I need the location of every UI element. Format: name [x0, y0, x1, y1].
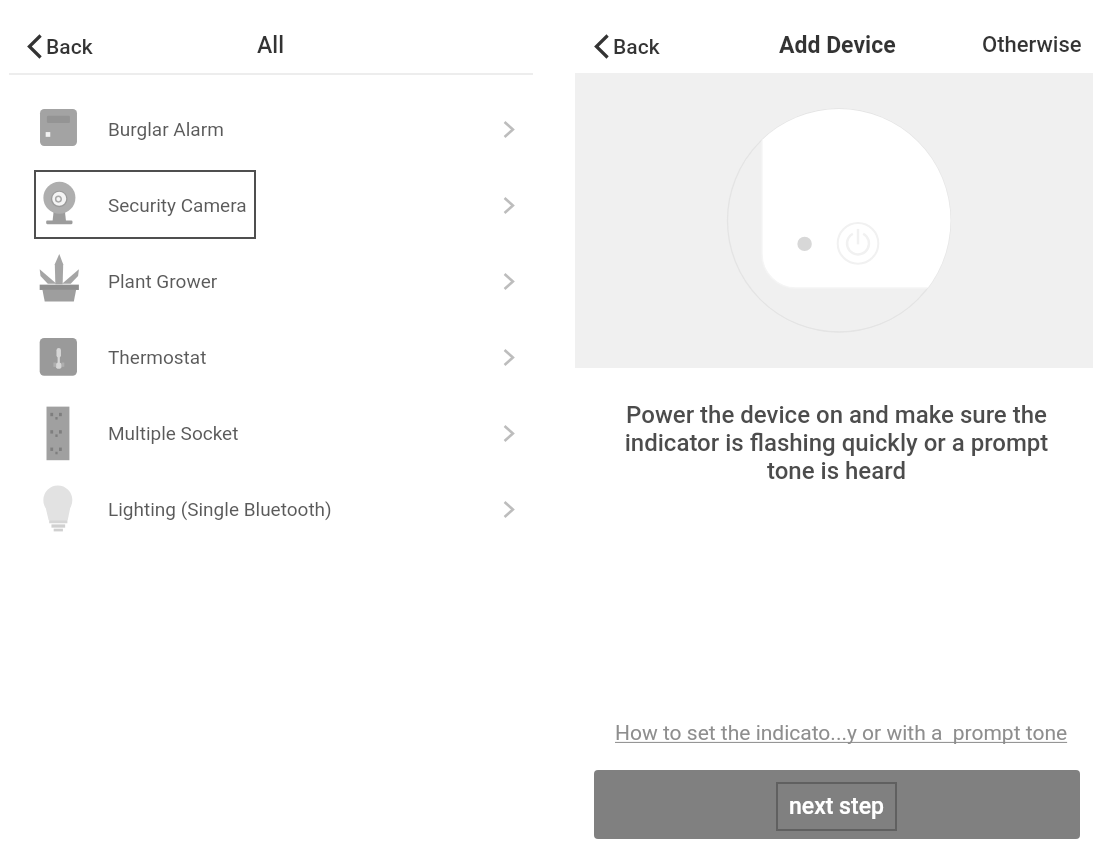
button[interactable]: Otherwise	[978, 28, 1086, 62]
staticText: Back	[46, 35, 93, 60]
button[interactable]: Back	[25, 31, 96, 60]
staticText: Security Camera	[108, 194, 247, 216]
staticText: Otherwise	[982, 32, 1082, 58]
staticText: Lighting (Single Bluetooth)	[108, 498, 332, 520]
staticText: Power the device on and make sure the in…	[618, 401, 1055, 485]
button[interactable]: next step	[594, 770, 1080, 839]
button[interactable]: Lighting (Single Bluetooth)	[0, 471, 546, 547]
staticText: next step	[789, 793, 884, 820]
staticText: Back	[613, 35, 660, 60]
staticText: Burglar Alarm	[108, 118, 224, 140]
staticText: Plant Grower	[108, 270, 218, 292]
staticText: All	[257, 32, 285, 59]
button[interactable]: Security Camera	[0, 167, 546, 243]
button[interactable]: How to set the indicato...y or with a pr…	[606, 721, 1076, 746]
staticText: How to set the indicato...y or with a pr…	[615, 721, 1068, 746]
button[interactable]: Thermostat	[0, 319, 546, 395]
staticText: Add Device	[779, 32, 896, 59]
button[interactable]: Burglar Alarm	[0, 91, 546, 167]
staticText: Multiple Socket	[108, 422, 239, 444]
button[interactable]: Multiple Socket	[0, 395, 546, 471]
button[interactable]: Back	[592, 31, 663, 60]
staticText: Thermostat	[108, 346, 207, 368]
button[interactable]: Plant Grower	[0, 243, 546, 319]
